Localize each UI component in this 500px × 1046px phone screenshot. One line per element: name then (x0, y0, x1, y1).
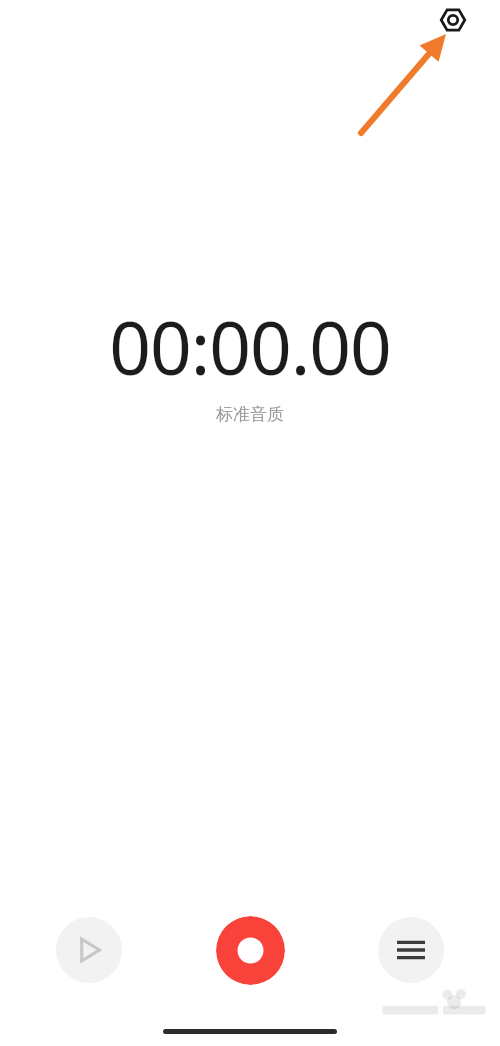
staticText: 00:00.00 (109, 297, 391, 396)
button[interactable]: Menu (378, 917, 444, 983)
staticText: 标准音质 (216, 404, 284, 425)
button[interactable]: Record (216, 916, 285, 985)
button[interactable]: Settings (433, 0, 473, 40)
button[interactable]: Play (56, 917, 122, 983)
